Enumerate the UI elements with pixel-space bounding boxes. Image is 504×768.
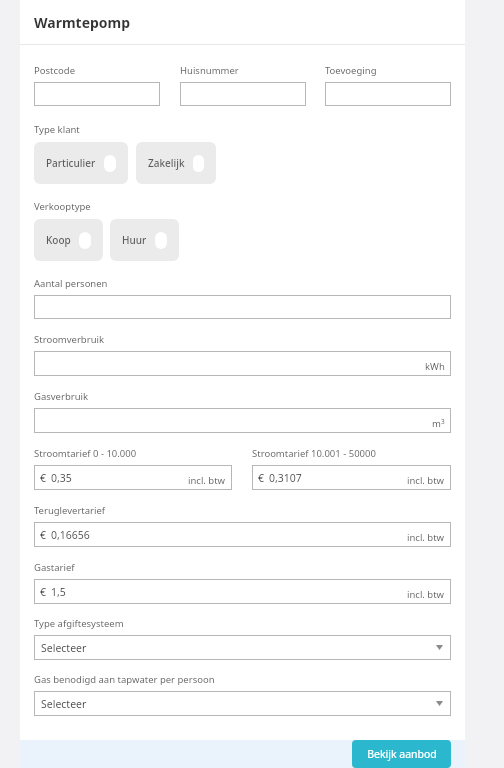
staticText: Zakelijk [148, 156, 185, 170]
staticText: Type klant [34, 123, 80, 136]
staticText: m [432, 417, 441, 430]
button[interactable] [180, 82, 306, 106]
staticText: incl. btw [407, 588, 445, 601]
button[interactable]: Koop [34, 219, 103, 261]
staticText: 3 [441, 417, 445, 426]
button[interactable] [325, 82, 451, 106]
staticText: Huisnummer [180, 64, 239, 77]
staticText: incl. btw [407, 531, 445, 544]
button[interactable]: kWh [34, 351, 451, 376]
staticText: Stroomtarief 10.001 - 50000 [252, 447, 376, 460]
staticText: 0,35 [51, 471, 72, 485]
staticText: € [40, 528, 47, 542]
staticText: incl. btw [188, 474, 226, 487]
staticText: € [40, 471, 47, 485]
staticText: Toevoeging [325, 64, 377, 77]
button[interactable]: Selecteer [34, 691, 451, 716]
button[interactable]: Particulier [34, 142, 128, 184]
staticText: € [40, 585, 47, 599]
staticText: Stroomtarief 0 - 10.000 [34, 447, 137, 460]
staticText: Bekijk aanbod [367, 747, 437, 761]
button[interactable] [34, 82, 160, 106]
staticText: Gastarief [34, 561, 75, 574]
staticText: Gas benodigd aan tapwater per persoon [34, 673, 215, 686]
staticText: 0,16656 [51, 528, 90, 542]
button[interactable]: € [34, 522, 451, 547]
button[interactable]: € [252, 465, 451, 490]
staticText: Particulier [46, 156, 96, 170]
button[interactable]: Zakelijk [136, 142, 216, 184]
staticText: kWh [425, 360, 445, 373]
staticText: Stroomverbruik [34, 333, 105, 346]
staticText: incl. btw [407, 474, 445, 487]
staticText: Verkooptype [34, 200, 91, 213]
button[interactable]: Selecteer [34, 635, 451, 660]
staticText: € [258, 471, 265, 485]
staticText: Huur [122, 233, 147, 247]
staticText: Warmtepomp [34, 13, 131, 32]
staticText: 0,3107 [269, 471, 302, 485]
staticText: Aantal personen [34, 277, 108, 290]
staticText: Selecteer [41, 697, 87, 711]
button[interactable]: € [34, 579, 451, 604]
staticText: 1,5 [51, 585, 66, 599]
button[interactable]: Bekijk aanbod [352, 740, 451, 768]
staticText: Postcode [34, 64, 75, 77]
staticText: Type afgiftesysteem [34, 617, 124, 630]
staticText: Koop [46, 233, 71, 247]
staticText: Gasverbruik [34, 390, 89, 403]
staticText: Teruglevertarief [34, 504, 106, 517]
button[interactable]: € [34, 465, 232, 490]
staticText: Selecteer [41, 641, 87, 655]
button[interactable]: Huur [110, 219, 179, 261]
button[interactable] [34, 295, 451, 319]
button[interactable]: m [34, 408, 451, 433]
